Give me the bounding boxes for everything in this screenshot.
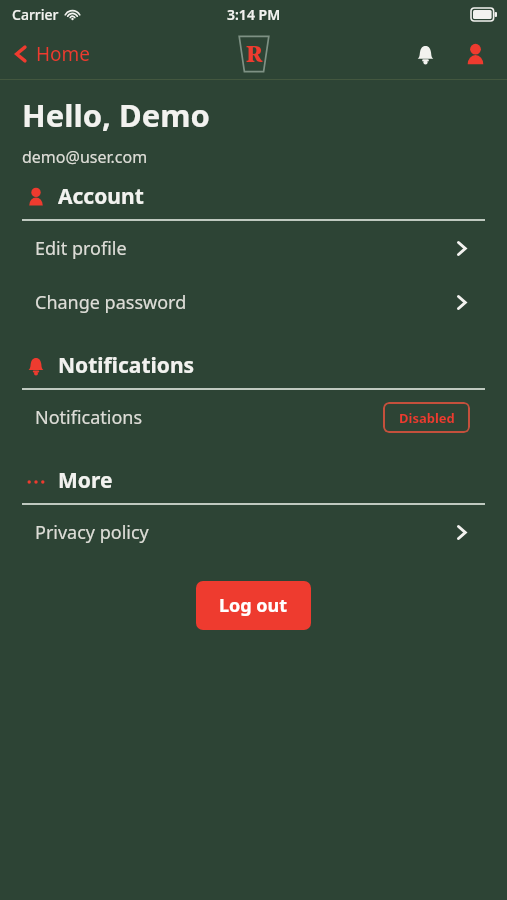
staticText: Carrier (12, 5, 59, 24)
button[interactable]: Log out (196, 581, 311, 630)
staticText: Privacy policy (35, 520, 454, 545)
button[interactable]: Edit profile (0, 221, 507, 275)
staticText: Disabled (399, 409, 455, 427)
staticText: Home (36, 41, 91, 67)
button[interactable]: Disabled (383, 402, 470, 433)
staticText: Edit profile (35, 236, 454, 261)
staticText: Notifications (58, 351, 195, 380)
staticText: R (246, 38, 263, 68)
button[interactable]: Profile (457, 36, 493, 72)
staticText: Hello, Demo (22, 94, 210, 136)
staticText: 3:14 PM (227, 5, 281, 24)
staticText: demo@user.com (22, 146, 148, 168)
button[interactable]: Change password (0, 275, 507, 329)
staticText: More (58, 466, 113, 495)
staticText: Change password (35, 290, 454, 315)
staticText: Log out (219, 593, 288, 618)
button[interactable]: Notifications (407, 36, 443, 72)
button[interactable]: Privacy policy (0, 505, 507, 559)
staticText: Account (58, 182, 144, 211)
button[interactable]: Home (8, 37, 95, 71)
staticText: Notifications (35, 405, 383, 430)
